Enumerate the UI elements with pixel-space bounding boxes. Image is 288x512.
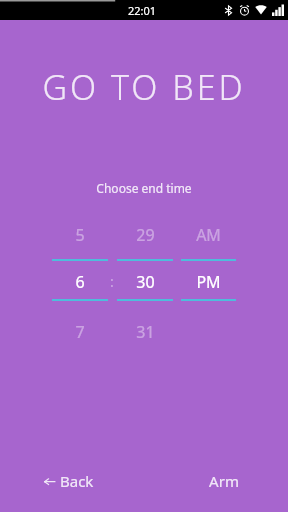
- staticText: Choose end time: [96, 180, 192, 196]
- button[interactable]: Hour 6: [52, 271, 108, 291]
- staticText: Arm: [209, 471, 239, 491]
- staticText: Back: [60, 471, 94, 491]
- staticText: AM: [196, 224, 221, 244]
- button[interactable]: Minute 30: [117, 271, 173, 291]
- button[interactable]: Back: [36, 468, 102, 494]
- staticText: 30: [136, 271, 155, 291]
- staticText: 31: [136, 321, 155, 341]
- staticText: :: [110, 272, 114, 291]
- staticText: PM: [196, 271, 221, 291]
- staticText: GO TO BED: [42, 64, 246, 110]
- staticText: 5: [75, 224, 85, 244]
- staticText: 29: [136, 224, 155, 244]
- button[interactable]: PM: [180, 271, 236, 291]
- staticText: 7: [75, 321, 85, 341]
- staticText: 6: [75, 271, 85, 291]
- staticText: 22:01: [128, 3, 157, 18]
- button[interactable]: Arm: [196, 468, 252, 494]
